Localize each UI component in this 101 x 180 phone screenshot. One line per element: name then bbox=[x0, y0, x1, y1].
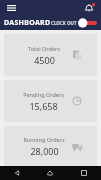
button[interactable]: Recent apps bbox=[67, 166, 101, 180]
staticText: Total Orders bbox=[28, 45, 60, 52]
staticText: 28,000 bbox=[30, 145, 59, 157]
staticText: Running Orders bbox=[23, 136, 65, 143]
staticText: Pending Orders bbox=[23, 91, 64, 98]
button[interactable]: Open navigation menu bbox=[5, 2, 17, 14]
button[interactable]: Back bbox=[0, 166, 33, 180]
button[interactable]: Pending Orders bbox=[4, 80, 97, 122]
staticText: CLOCK OUT bbox=[51, 20, 77, 26]
staticText: DASHBOARD bbox=[4, 18, 51, 28]
button[interactable]: Total Orders bbox=[4, 34, 97, 76]
staticText: 15,658 bbox=[29, 100, 58, 112]
button[interactable]: Running Orders bbox=[4, 126, 97, 166]
button[interactable]: Notifications bbox=[82, 1, 96, 15]
button[interactable]: Home bbox=[33, 166, 67, 180]
staticText: 4500 bbox=[34, 54, 55, 66]
button[interactable]: CLOCK OUT bbox=[51, 18, 98, 28]
